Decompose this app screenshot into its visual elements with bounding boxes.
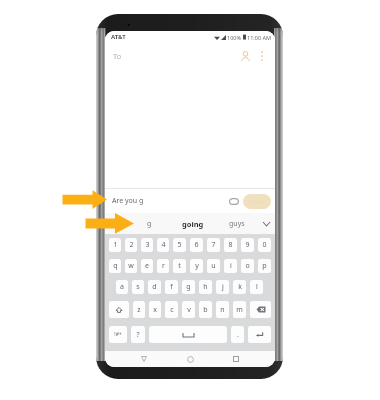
button[interactable]: j <box>216 280 229 294</box>
staticText: x <box>153 305 157 315</box>
button[interactable]: o <box>241 259 254 273</box>
staticText: a <box>120 282 124 292</box>
staticText: n <box>220 305 225 315</box>
staticText: 6 <box>194 240 199 250</box>
button[interactable]: 3 <box>141 238 153 252</box>
button[interactable]: s <box>132 280 144 294</box>
staticText: w <box>128 261 134 271</box>
button[interactable]: n <box>216 301 229 318</box>
staticText: s <box>136 282 140 292</box>
button[interactable]: ? <box>131 326 145 343</box>
button[interactable]: h <box>199 280 212 294</box>
staticText: 8 <box>228 240 233 250</box>
button[interactable]: Add contact <box>236 47 254 65</box>
staticText: u <box>211 261 216 271</box>
staticText: g <box>147 219 152 229</box>
button[interactable]: m <box>233 301 246 318</box>
staticText: q <box>113 261 118 271</box>
staticText: 5 <box>177 240 182 250</box>
staticText: c <box>170 305 174 315</box>
staticText: k <box>238 282 242 292</box>
staticText: 4 <box>161 240 166 250</box>
button[interactable]: v <box>182 301 195 318</box>
button[interactable]: e <box>141 259 153 273</box>
staticText: j <box>222 282 224 292</box>
staticText: i <box>230 261 232 271</box>
button[interactable]: q <box>109 259 121 273</box>
button[interactable]: 4 <box>157 238 169 252</box>
staticText: z <box>137 305 141 315</box>
button[interactable]: Are you g <box>112 189 228 213</box>
staticText: 11:00 AM <box>247 34 271 41</box>
button[interactable]: Back <box>137 352 151 366</box>
button[interactable]: 1 <box>109 238 121 252</box>
button[interactable]: !#+ <box>109 326 127 343</box>
staticText: o <box>245 261 250 271</box>
button[interactable]: k <box>233 280 246 294</box>
button[interactable]: w <box>125 259 137 273</box>
staticText: b <box>203 305 208 315</box>
staticText: d <box>152 282 157 292</box>
staticText: Are you g <box>112 196 144 206</box>
button[interactable]: 8 <box>224 238 237 252</box>
button[interactable]: 0 <box>258 238 271 252</box>
button[interactable]: x <box>149 301 161 318</box>
button[interactable]: 7 <box>207 238 220 252</box>
button[interactable]: c <box>165 301 178 318</box>
staticText: !#+ <box>114 331 122 338</box>
button[interactable]: guys <box>215 213 259 234</box>
button[interactable]: l <box>250 280 263 294</box>
staticText: f <box>170 282 173 292</box>
button[interactable]: g <box>182 280 195 294</box>
button[interactable]: Enter <box>248 326 271 343</box>
button[interactable]: Emoji <box>228 195 240 207</box>
staticText: 9 <box>245 240 250 250</box>
button[interactable]: r <box>157 259 169 273</box>
staticText: g <box>186 282 191 292</box>
button[interactable]: 9 <box>241 238 254 252</box>
button[interactable]: i <box>224 259 237 273</box>
staticText: l <box>256 282 258 292</box>
button[interactable]: Send <box>243 194 271 209</box>
staticText: 1 <box>113 240 118 250</box>
staticText: m <box>236 305 243 315</box>
button[interactable]: . <box>231 326 244 343</box>
staticText: 7 <box>211 240 216 250</box>
button[interactable]: Expand suggestions <box>259 213 273 234</box>
button[interactable]: Shift <box>109 301 129 318</box>
button[interactable]: z <box>133 301 145 318</box>
button[interactable]: 5 <box>173 238 186 252</box>
button[interactable]: going <box>171 213 215 234</box>
button[interactable]: f <box>165 280 178 294</box>
staticText: going <box>182 219 204 229</box>
button[interactable]: d <box>148 280 161 294</box>
button[interactable]: To <box>113 44 236 68</box>
staticText: t <box>178 261 181 271</box>
staticText: p <box>262 261 267 271</box>
staticText: AT&T <box>111 33 126 41</box>
button[interactable]: u <box>207 259 220 273</box>
staticText: e <box>145 261 149 271</box>
button[interactable]: g <box>128 213 171 234</box>
button[interactable]: y <box>190 259 203 273</box>
button[interactable]: b <box>199 301 212 318</box>
staticText: 0 <box>262 240 267 250</box>
button[interactable]: 2 <box>125 238 137 252</box>
button[interactable]: 6 <box>190 238 203 252</box>
button[interactable]: a <box>116 280 128 294</box>
staticText: 100% <box>227 34 242 41</box>
staticText: guys <box>229 219 245 229</box>
button[interactable]: Recents <box>229 352 243 366</box>
staticText: . <box>237 330 239 340</box>
staticText: 2 <box>129 240 134 250</box>
button[interactable]: Backspace <box>250 301 271 318</box>
button[interactable]: Space <box>149 326 227 343</box>
button[interactable]: t <box>173 259 186 273</box>
staticText: To <box>113 51 122 61</box>
button[interactable]: p <box>258 259 271 273</box>
button[interactable]: More options <box>255 49 269 63</box>
staticText: v <box>187 305 191 315</box>
button[interactable]: Home <box>183 352 197 366</box>
staticText: r <box>162 261 165 271</box>
